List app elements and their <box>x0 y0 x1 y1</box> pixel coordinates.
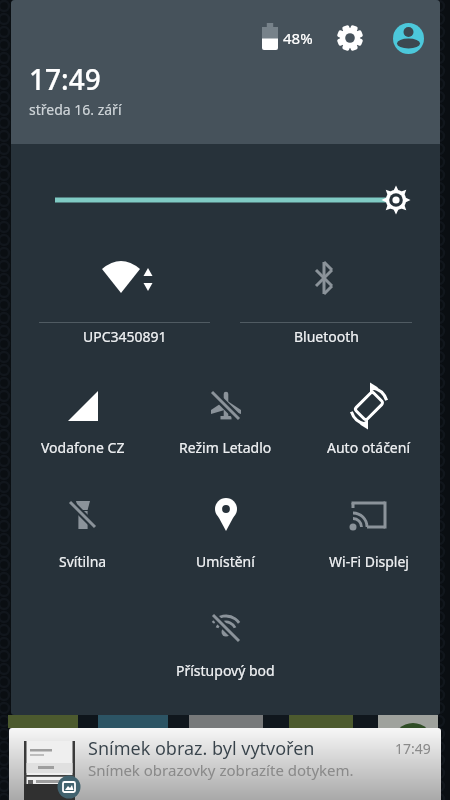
staticText: Přístupový bod <box>176 661 275 680</box>
staticText: Režim Letadlo <box>179 438 272 457</box>
staticText: středa 16. září <box>29 100 122 119</box>
staticText: 17:49 <box>29 60 101 98</box>
button[interactable]: Wi-Fi Displej <box>297 483 440 583</box>
button[interactable] <box>334 22 366 54</box>
staticText: Umístění <box>196 552 255 571</box>
staticText: 48% <box>283 28 313 48</box>
staticText: Snímek obraz. byl vytvořen <box>88 736 315 761</box>
staticText: Wi-Fi Displej <box>329 552 409 571</box>
button[interactable]: Režim Letadlo <box>154 368 297 468</box>
button[interactable]: Umístění <box>154 483 297 583</box>
staticText: 17:49 <box>395 739 431 758</box>
button[interactable]: Přístupový bod <box>154 596 297 696</box>
button[interactable]: Snímek obraz. byl vytvořen <box>9 728 441 800</box>
button[interactable]: Auto otáčení <box>297 368 440 468</box>
staticText: UPC3450891 <box>83 327 167 346</box>
button[interactable]: Vodafone CZ <box>11 368 154 468</box>
staticText: Snímek obrazovky zobrazíte dotykem. <box>88 760 354 780</box>
staticText: Auto otáčení <box>327 438 411 457</box>
staticText: Bluetooth <box>294 327 359 346</box>
staticText: Vodafone CZ <box>41 438 125 457</box>
button[interactable]: UPC3450891 <box>24 244 225 349</box>
button[interactable]: Bluetooth <box>225 244 427 349</box>
button[interactable] <box>393 23 424 54</box>
button[interactable] <box>11 160 440 240</box>
button[interactable]: Svítilna <box>11 483 154 583</box>
staticText: Svítilna <box>59 552 107 571</box>
